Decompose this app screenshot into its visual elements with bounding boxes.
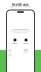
staticText: Get the convenience you need: [10, 6, 31, 8]
staticText: Health care: [12, 3, 29, 6]
